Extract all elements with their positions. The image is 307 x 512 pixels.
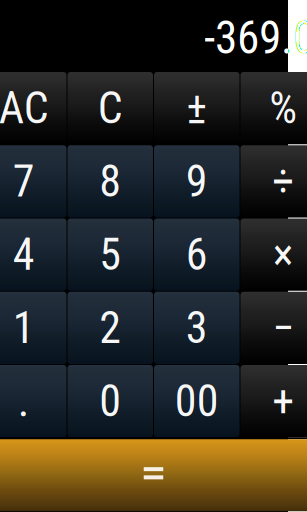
button[interactable]: 3 (154, 292, 239, 364)
button[interactable]: × (240, 218, 307, 291)
button[interactable]: ± (154, 72, 239, 144)
staticText: ± (186, 82, 207, 134)
staticText: 8 (99, 156, 121, 207)
staticText: 7 (13, 156, 35, 207)
staticText: AC (0, 82, 49, 134)
button[interactable]: 9 (154, 145, 239, 217)
staticText: × (273, 229, 294, 280)
button[interactable] (0, 439, 307, 511)
button[interactable]: C (67, 72, 153, 144)
button[interactable]: 6 (154, 218, 239, 291)
staticText: 9 (186, 156, 208, 207)
button[interactable]: 4 (0, 218, 66, 291)
staticText: − (272, 302, 294, 354)
staticText: 6 (186, 229, 208, 280)
staticText: 5 (99, 229, 121, 280)
staticText: 3 (186, 302, 208, 354)
button[interactable]: 1 (0, 292, 66, 364)
staticText: C (98, 82, 123, 134)
button[interactable]: + (240, 365, 307, 437)
button[interactable]: 5 (67, 218, 153, 291)
staticText: 2 (99, 302, 121, 354)
staticText: . (18, 375, 30, 427)
button[interactable]: 7 (0, 145, 66, 217)
button[interactable]: 8 (67, 145, 153, 217)
staticText: 4 (13, 229, 35, 280)
staticText: 1 (13, 302, 35, 354)
button[interactable]: % (240, 72, 307, 144)
staticText: + (272, 375, 294, 427)
button[interactable]: 0 (67, 365, 153, 437)
button[interactable]: . (0, 365, 66, 437)
staticText: 00 (175, 375, 219, 427)
staticText: ÷ (272, 156, 294, 207)
staticText: -369.0 (204, 11, 307, 64)
button[interactable]: 00 (154, 365, 239, 437)
button[interactable]: 2 (67, 292, 153, 364)
staticText: % (269, 82, 297, 134)
button[interactable]: ÷ (240, 145, 307, 217)
button[interactable]: AC (0, 72, 66, 144)
button[interactable]: − (240, 292, 307, 364)
staticText: 0 (99, 375, 121, 427)
